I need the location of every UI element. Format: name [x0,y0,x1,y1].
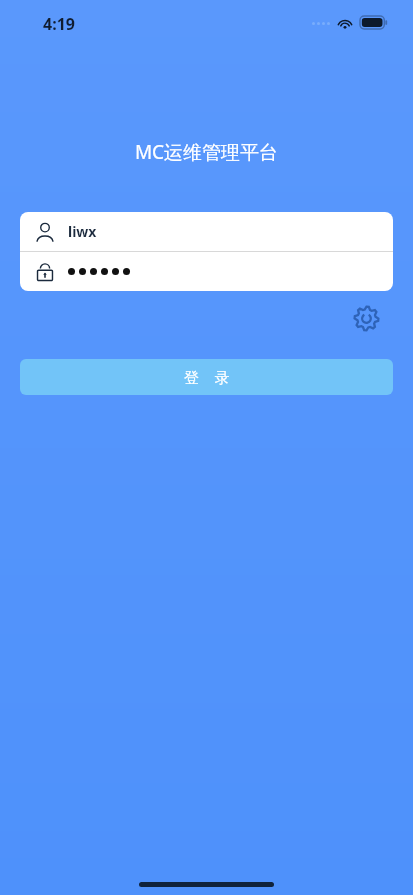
staticText: 登 录 [184,367,230,387]
button[interactable]: liwx [20,212,393,251]
button[interactable]: 登 录 [20,359,393,395]
staticText: liwx [68,222,97,241]
staticText: 4:19 [43,13,75,35]
button[interactable] [20,252,393,291]
staticText: MC运维管理平台 [0,139,413,165]
button[interactable]: Settings [352,304,381,333]
